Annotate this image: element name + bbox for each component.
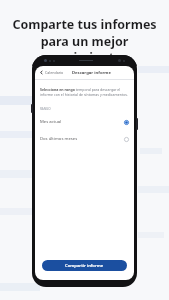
staticText: Comparte tus informes para un mejor segu…	[12, 16, 157, 65]
staticText: RANGO	[40, 107, 51, 111]
button[interactable]: Calendario, atrás	[38, 69, 65, 76]
staticText: Dos últimos meses	[40, 136, 78, 142]
staticText: Descargar informe	[72, 70, 111, 76]
button[interactable]: Compartir informe	[42, 260, 127, 271]
staticText: Compartir informe	[65, 263, 104, 269]
button[interactable]: Mes actual	[35, 116, 134, 128]
staticText: Selecciona en rango temporal para descar…	[40, 87, 129, 97]
button[interactable]: Dos últimos meses	[35, 133, 134, 145]
staticText: Calendario	[45, 70, 64, 75]
staticText: Mes actual	[40, 119, 62, 125]
